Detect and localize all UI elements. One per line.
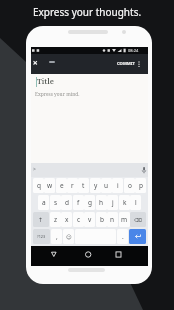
button[interactable]: p: [135, 178, 146, 193]
staticText: d: [65, 198, 69, 207]
staticText: ☺: [66, 234, 72, 240]
button[interactable]: ?123: [33, 229, 50, 244]
staticText: j: [112, 198, 114, 207]
staticText: s: [54, 198, 58, 207]
staticText: m: [121, 215, 128, 224]
button[interactable]: d: [61, 195, 72, 210]
button[interactable]: w: [44, 178, 55, 193]
button[interactable]: ↑: [33, 212, 49, 227]
staticText: p: [139, 181, 143, 190]
button[interactable]: a: [38, 195, 49, 210]
button[interactable]: [142, 167, 146, 174]
staticText: k: [123, 198, 127, 207]
staticText: 08:24: [128, 48, 139, 53]
button[interactable]: y: [90, 178, 101, 193]
button[interactable]: j: [107, 195, 118, 210]
button[interactable]: r: [67, 178, 78, 193]
button[interactable]: [112, 248, 125, 261]
staticText: l: [135, 198, 137, 207]
button[interactable]: [47, 248, 60, 261]
staticText: v: [88, 215, 92, 224]
staticText: t: [82, 181, 85, 190]
staticText: ,: [56, 232, 58, 241]
button[interactable]: g: [84, 195, 95, 210]
button[interactable]: t: [78, 178, 89, 193]
staticText: b: [100, 215, 104, 224]
staticText: g: [88, 198, 92, 207]
staticText: c: [77, 215, 81, 224]
staticText: f: [77, 198, 80, 207]
button[interactable]: v: [84, 212, 95, 227]
button[interactable]: ,: [51, 229, 62, 244]
staticText: h: [99, 198, 104, 207]
staticText: Title: [37, 76, 54, 86]
button[interactable]: h: [96, 195, 107, 210]
staticText: q: [37, 181, 41, 190]
button[interactable]: z: [50, 212, 61, 227]
button[interactable]: e: [56, 178, 67, 193]
button[interactable]: [31, 59, 41, 69]
staticText: >: [33, 166, 36, 173]
staticText: .: [122, 232, 124, 241]
staticText: ?123: [37, 234, 46, 239]
button[interactable]: ☺: [63, 229, 74, 244]
button[interactable]: COMMIT: [117, 61, 135, 67]
button[interactable]: c: [73, 212, 84, 227]
button[interactable]: [129, 229, 146, 244]
button[interactable]: l: [130, 195, 141, 210]
button[interactable]: ⌫: [130, 212, 146, 227]
staticText: i: [117, 181, 119, 190]
button[interactable]: .: [117, 229, 128, 244]
staticText: a: [42, 198, 46, 207]
staticText: z: [54, 215, 58, 224]
button[interactable]: u: [101, 178, 112, 193]
staticText: y: [94, 181, 98, 190]
staticText: o: [128, 181, 132, 190]
button[interactable]: [82, 248, 95, 261]
button[interactable]: x: [61, 212, 72, 227]
button[interactable]: k: [119, 195, 130, 210]
button[interactable]: [134, 54, 146, 74]
button[interactable]: m: [119, 212, 130, 227]
button[interactable]: i: [112, 178, 123, 193]
button[interactable]: s: [50, 195, 61, 210]
staticText: w: [47, 181, 53, 190]
staticText: ⌫: [134, 217, 142, 223]
staticText: ↑: [38, 216, 44, 223]
staticText: e: [60, 181, 64, 190]
staticText: x: [65, 215, 69, 224]
button[interactable]: o: [124, 178, 135, 193]
staticText: Express your thoughts.: [0, 5, 174, 19]
staticText: Express your mind.: [35, 91, 80, 98]
staticText: u: [104, 181, 109, 190]
button[interactable]: f: [73, 195, 84, 210]
button[interactable]: n: [107, 212, 118, 227]
staticText: r: [71, 181, 74, 190]
button[interactable]: b: [96, 212, 107, 227]
staticText: n: [110, 215, 115, 224]
button[interactable]: q: [33, 178, 44, 193]
